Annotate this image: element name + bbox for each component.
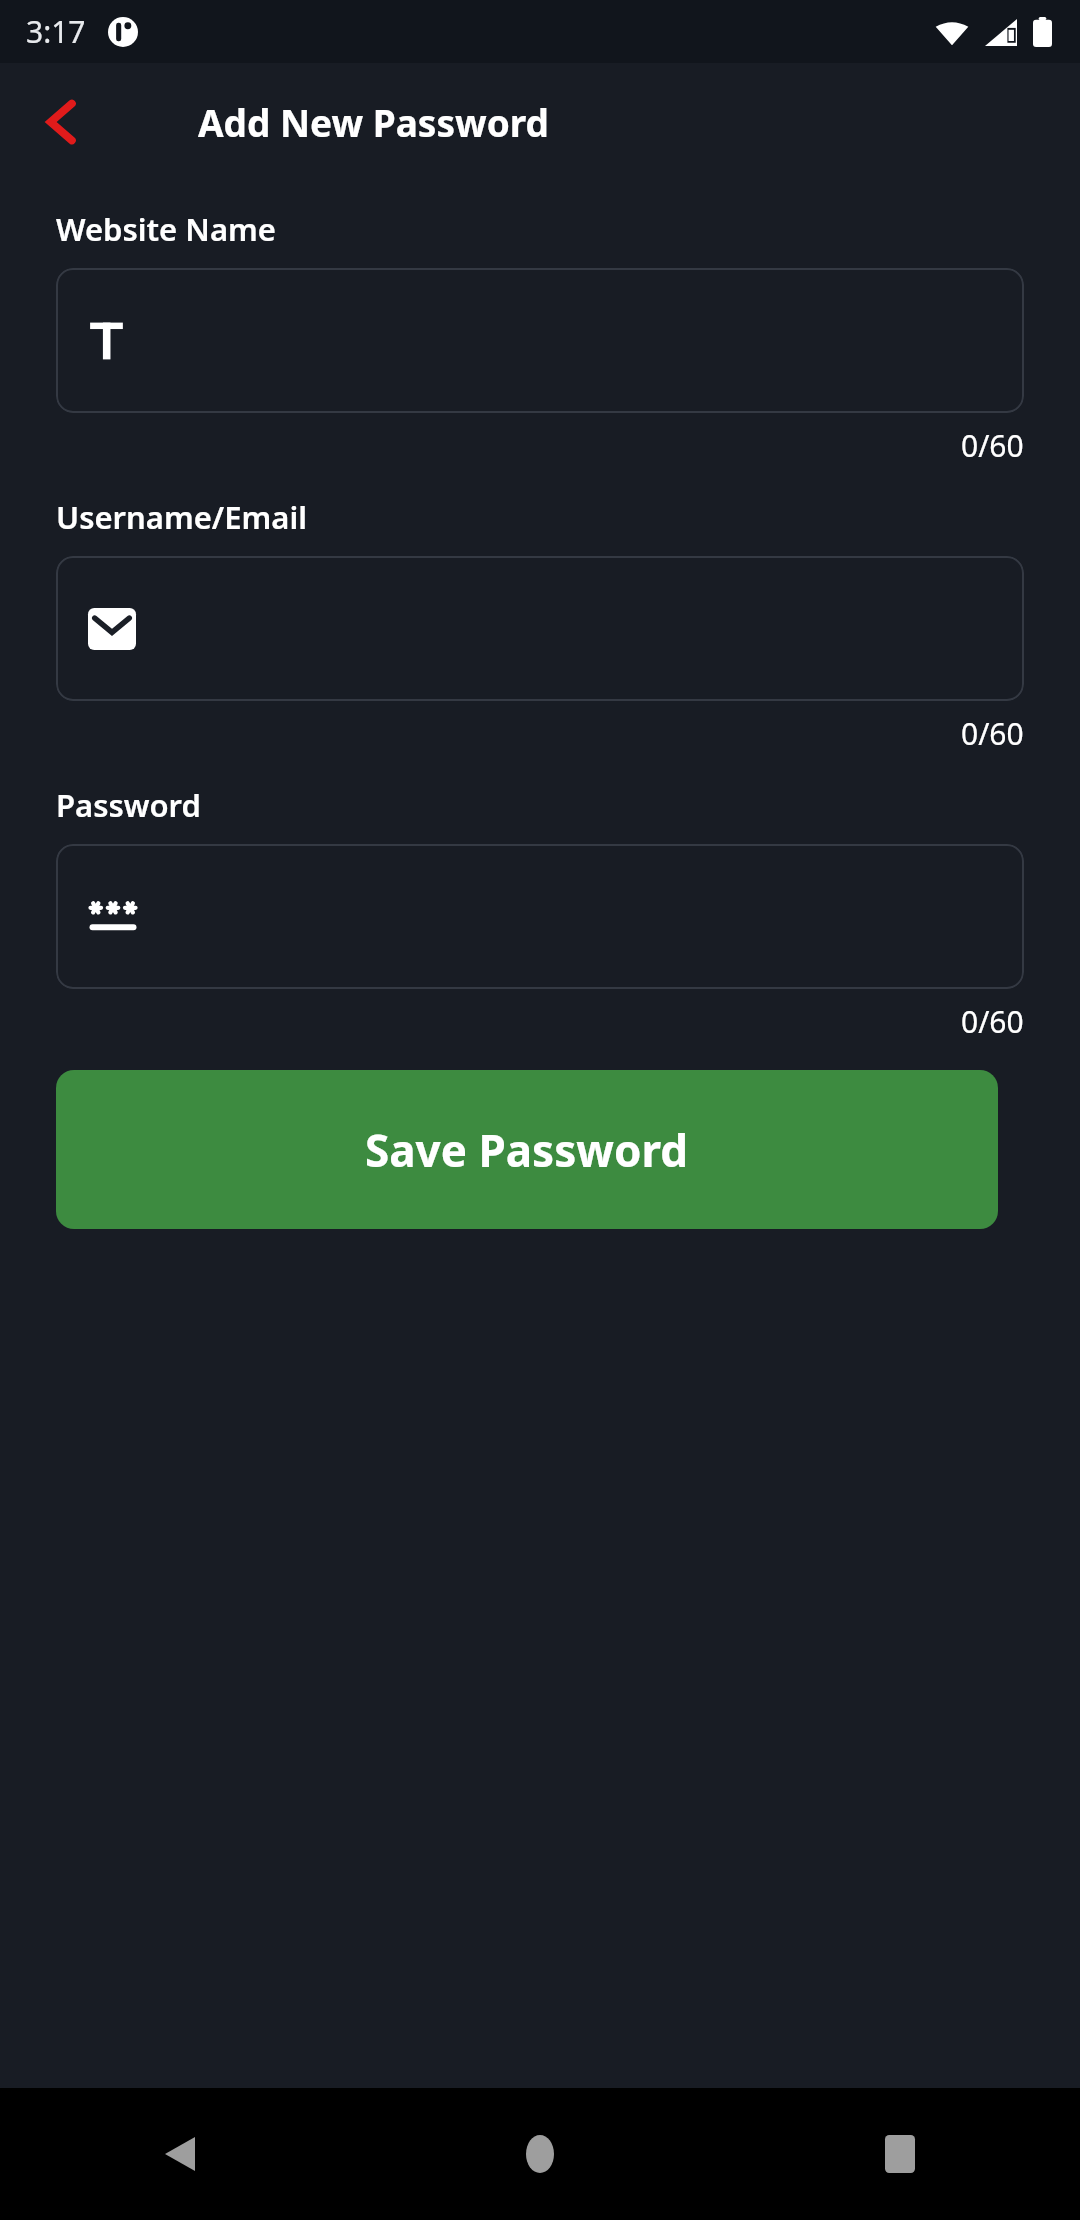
- staticText: Website Name: [56, 208, 276, 250]
- button[interactable]: [56, 556, 1024, 701]
- staticText: Username/Email: [56, 496, 307, 538]
- button[interactable]: Back: [0, 2088, 360, 2220]
- button[interactable]: Save Password: [56, 1070, 998, 1229]
- staticText: 0/60: [961, 425, 1024, 466]
- staticText: Save Password: [365, 1120, 689, 1180]
- staticText: 0/60: [961, 713, 1024, 754]
- button[interactable]: Back: [30, 91, 92, 153]
- staticText: 0/60: [961, 1001, 1024, 1042]
- staticText: Password: [56, 784, 201, 826]
- button[interactable]: [56, 844, 1024, 989]
- staticText: 3:17: [26, 11, 86, 52]
- staticText: Add New Password: [198, 97, 549, 147]
- button[interactable]: Recents: [720, 2088, 1080, 2220]
- button[interactable]: Home: [360, 2088, 720, 2220]
- button[interactable]: [56, 268, 1024, 413]
